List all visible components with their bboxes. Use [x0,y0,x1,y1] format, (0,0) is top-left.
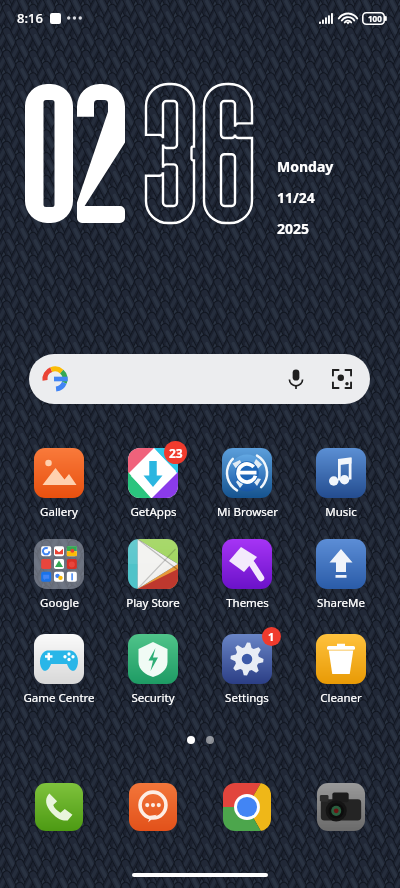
staticText: Settings [225,690,269,706]
staticText: Mi Browser [217,504,278,520]
staticText: 11/24 [277,188,315,207]
staticText: GetApps [130,504,177,520]
button[interactable]: Mi Browser [200,445,294,520]
staticText: Google [40,595,79,611]
button[interactable]: 1 [200,631,294,706]
staticText: Themes [226,595,269,611]
staticText: ShareMe [317,595,365,611]
staticText: 8:16 [17,9,43,27]
staticText: Monday [277,157,334,176]
staticText: 23 [169,445,183,461]
button[interactable]: Game Centre [12,631,106,706]
button[interactable]: ShareMe [294,536,388,611]
button[interactable]: Phone [35,783,83,831]
button[interactable]: Play Store [106,536,200,611]
button[interactable]: Security [106,631,200,706]
staticText: Cleaner [320,690,362,706]
button[interactable]: Cleaner [294,631,388,706]
button[interactable]: Voice search [281,364,311,394]
button[interactable]: Camera [317,783,365,831]
button[interactable]: Voice search [29,354,370,404]
staticText: 2025 [277,219,310,238]
button[interactable]: Gallery [12,445,106,520]
button[interactable]: Music [294,445,388,520]
staticText: Game Centre [23,690,95,706]
button[interactable]: Google Lens [327,364,357,394]
button[interactable]: Themes [200,536,294,611]
staticText: Gallery [40,504,78,520]
staticText: Play Store [126,595,180,611]
staticText: 1 [268,629,275,644]
staticText: 100 [368,13,382,24]
button[interactable]: Google [12,536,106,611]
staticText: Security [131,690,175,706]
staticText: Music [325,504,357,520]
button[interactable]: Chrome [223,783,271,831]
button[interactable]: Messages [129,783,177,831]
button[interactable]: 23 [106,445,200,520]
